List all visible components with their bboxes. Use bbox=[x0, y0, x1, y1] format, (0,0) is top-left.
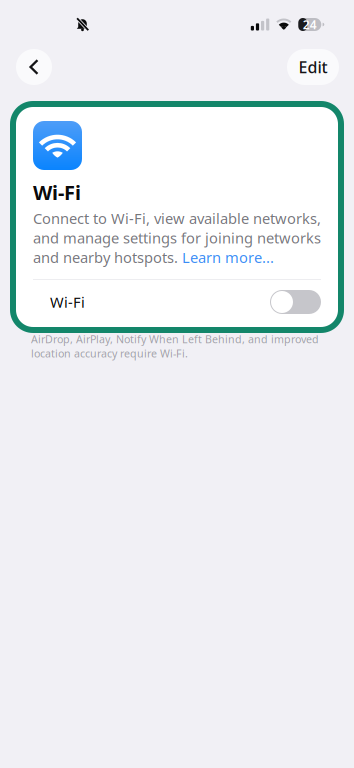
staticText: Connect to Wi-Fi, view available network… bbox=[33, 209, 321, 267]
staticText: 24 bbox=[303, 16, 317, 32]
button[interactable]: Edit bbox=[287, 49, 339, 85]
staticText: Wi-Fi bbox=[50, 292, 85, 312]
staticText: Edit bbox=[298, 56, 327, 78]
staticText: AirDrop, AirPlay, Notify When Left Behin… bbox=[31, 332, 319, 360]
button[interactable]: Back bbox=[16, 49, 52, 85]
staticText: Wi-Fi bbox=[33, 179, 81, 206]
button[interactable]: Wi-Fi bbox=[33, 284, 321, 320]
